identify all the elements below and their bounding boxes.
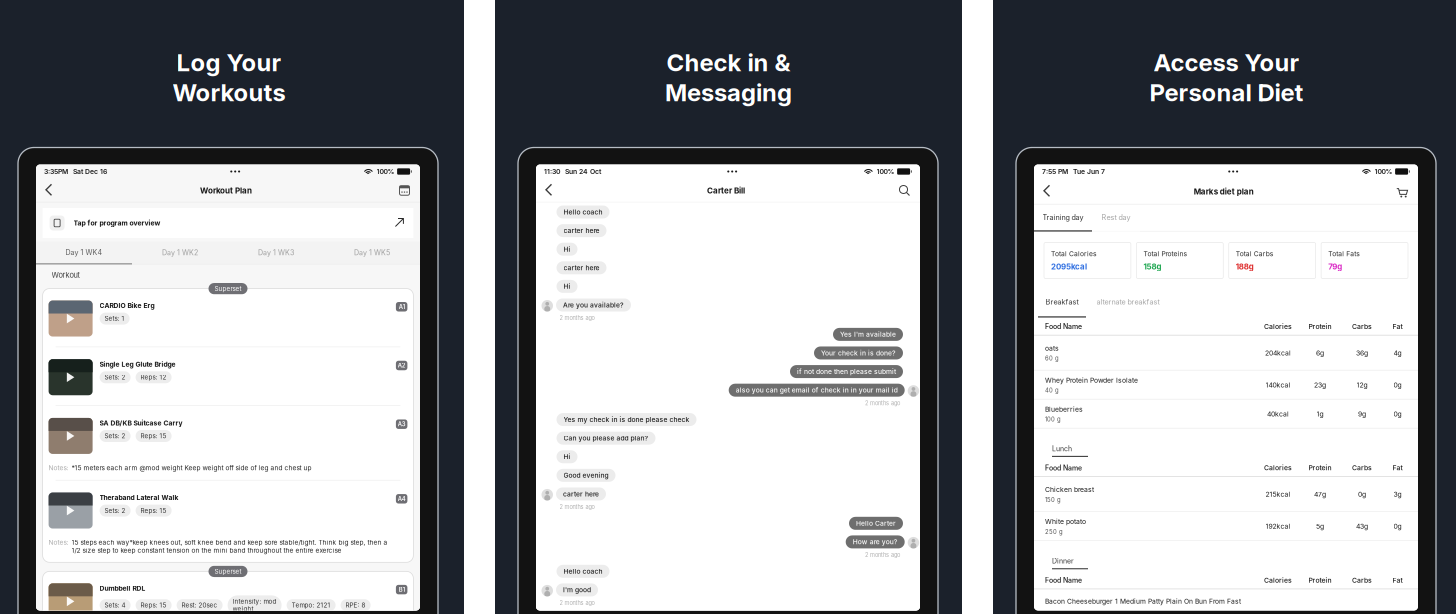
staticText: A3 bbox=[398, 421, 406, 428]
staticText: Food Name bbox=[1045, 576, 1082, 584]
staticText: 192kcal bbox=[1265, 522, 1290, 530]
staticText: 43g bbox=[1356, 522, 1368, 530]
staticText: How are you? bbox=[853, 538, 898, 546]
staticText: Breakfast bbox=[1045, 297, 1078, 306]
staticText: Carbs bbox=[1352, 576, 1372, 584]
staticText: 2 months ago bbox=[559, 315, 594, 321]
staticText: B1 bbox=[399, 586, 405, 593]
staticText: 5g bbox=[1316, 522, 1324, 530]
staticText: 40kcal bbox=[1267, 410, 1289, 418]
staticText: Lunch bbox=[1052, 444, 1072, 453]
button[interactable]: Back bbox=[36, 178, 63, 203]
staticText: Bacon Cheeseburger 1 Medium Patty Plain … bbox=[1045, 597, 1241, 605]
staticText: Tap for program overview bbox=[74, 219, 161, 227]
staticText: 12g bbox=[1356, 381, 1367, 389]
staticText: Hello Carter bbox=[856, 519, 896, 527]
staticText: Yes I'm available bbox=[840, 330, 896, 338]
staticText: Reps: 15 bbox=[141, 601, 167, 609]
staticText: Food Name bbox=[1045, 464, 1082, 472]
button[interactable]: Day 1 WK2 bbox=[132, 241, 228, 264]
staticText: Rest: 20sec bbox=[182, 601, 218, 609]
staticText: Total Carbs bbox=[1236, 250, 1274, 258]
staticText: Training day bbox=[1042, 213, 1083, 222]
staticText: Sets: 2 bbox=[105, 373, 126, 381]
staticText: 3g bbox=[1393, 490, 1401, 498]
staticText: 100 g bbox=[1045, 416, 1061, 423]
staticText: 9g bbox=[1358, 410, 1366, 418]
button[interactable]: Search bbox=[889, 179, 920, 202]
staticText: 215kcal bbox=[1265, 490, 1290, 498]
button[interactable]: Back bbox=[1034, 179, 1061, 204]
staticText: carter here bbox=[563, 490, 599, 498]
staticText: Fat bbox=[1392, 322, 1402, 331]
staticText: Protein bbox=[1308, 576, 1331, 584]
staticText: 0g bbox=[1358, 490, 1366, 498]
button[interactable]: Back bbox=[536, 178, 563, 203]
staticText: 2 months ago bbox=[559, 599, 594, 606]
staticText: 158g bbox=[1143, 262, 1161, 271]
staticText: 15 steps each way*keep knees out, soft k… bbox=[72, 538, 388, 554]
staticText: Hello coach bbox=[563, 567, 602, 575]
staticText: 23g bbox=[1314, 381, 1326, 389]
staticText: Dumbbell RDL bbox=[100, 584, 146, 592]
staticText: A1 bbox=[399, 303, 405, 310]
staticText: Messaging bbox=[665, 78, 792, 107]
staticText: Single Leg Glute Bridge bbox=[100, 360, 176, 368]
staticText: Day 1 WK3 bbox=[258, 248, 294, 257]
staticText: 150 g bbox=[1045, 496, 1061, 503]
staticText: 250 g bbox=[1045, 528, 1063, 535]
staticText: Workouts bbox=[172, 78, 285, 107]
staticText: alternate breakfast bbox=[1096, 297, 1159, 306]
staticText: Fat bbox=[1392, 576, 1402, 584]
staticText: Workout Plan bbox=[200, 186, 252, 195]
staticText: oats bbox=[1045, 344, 1059, 352]
button[interactable]: Rest day bbox=[1092, 204, 1140, 231]
staticText: Rest day bbox=[1101, 213, 1130, 222]
staticText: Sets: 2 bbox=[105, 507, 126, 514]
staticText: Hello coach bbox=[563, 208, 602, 216]
button[interactable]: Calendar bbox=[389, 179, 420, 202]
staticText: Day 1 WK4 bbox=[65, 248, 102, 257]
staticText: Carbs bbox=[1352, 322, 1372, 331]
staticText: A2 bbox=[398, 362, 406, 369]
staticText: 2 months ago bbox=[559, 504, 594, 510]
staticText: 0g bbox=[1393, 381, 1401, 389]
staticText: RPE: 8 bbox=[346, 601, 366, 609]
staticText: Tempo: 2121 bbox=[292, 601, 331, 609]
staticText: Notes: bbox=[49, 538, 69, 546]
staticText: Hi bbox=[563, 245, 570, 253]
staticText: Reps: 12 bbox=[141, 373, 167, 381]
staticText: 100% bbox=[376, 167, 394, 176]
staticText: Check in & bbox=[666, 48, 790, 77]
staticText: I'm good bbox=[563, 586, 591, 594]
button[interactable]: alternate breakfast bbox=[1086, 287, 1170, 317]
staticText: Superset bbox=[214, 285, 241, 292]
staticText: 188g bbox=[1236, 262, 1254, 271]
staticText: 204kcal bbox=[1265, 349, 1291, 357]
button[interactable]: Day 1 WK3 bbox=[228, 241, 324, 264]
staticText: A4 bbox=[398, 495, 406, 502]
staticText: Total Calories bbox=[1051, 250, 1097, 258]
staticText: Total Proteins bbox=[1143, 250, 1187, 258]
staticText: 6g bbox=[1316, 349, 1324, 357]
staticText: Hi bbox=[563, 282, 570, 290]
staticText: Sets: 4 bbox=[105, 601, 126, 609]
staticText: Are you available? bbox=[563, 301, 624, 309]
button[interactable]: Day 1 WK5 bbox=[324, 241, 420, 264]
staticText: 2 months ago bbox=[865, 551, 900, 558]
staticText: Tue Jun 7 bbox=[1073, 167, 1105, 176]
staticText: 100% bbox=[1374, 167, 1392, 176]
button[interactable]: Cart bbox=[1386, 180, 1418, 203]
staticText: Sat Dec 16 bbox=[73, 167, 107, 176]
staticText: Sets: 1 bbox=[105, 315, 125, 322]
button[interactable]: Breakfast bbox=[1038, 287, 1086, 317]
staticText: Access Your bbox=[1153, 48, 1299, 77]
staticText: Superset bbox=[214, 568, 241, 575]
staticText: 3:35PM bbox=[44, 167, 68, 176]
staticText: Calories bbox=[1264, 576, 1292, 584]
staticText: 100% bbox=[876, 167, 894, 176]
staticText: Carter Bill bbox=[707, 186, 745, 195]
staticText: 11:30 bbox=[544, 167, 560, 176]
button[interactable]: Day 1 WK4 bbox=[36, 241, 132, 264]
button[interactable]: Training day bbox=[1034, 204, 1092, 231]
